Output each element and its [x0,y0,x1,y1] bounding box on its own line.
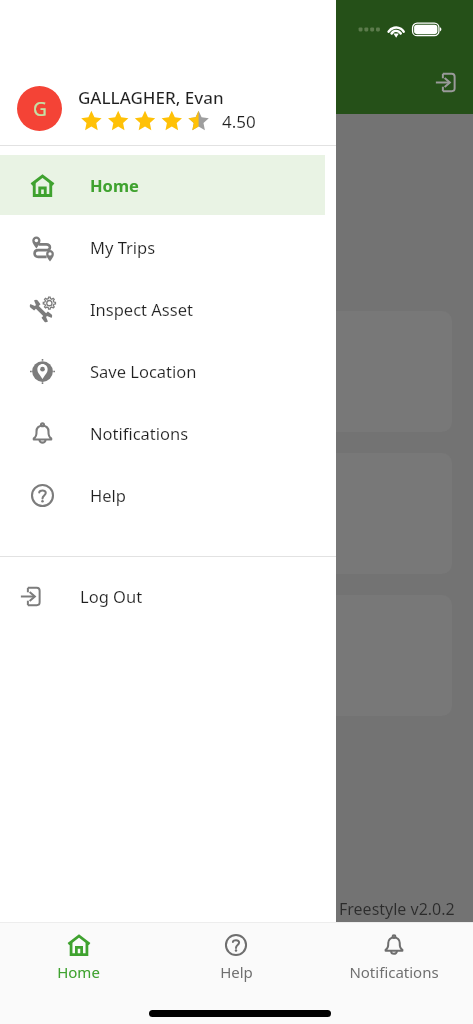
button[interactable]: Home [0,923,157,996]
button[interactable]: Home [0,155,325,215]
button[interactable]: Log out [422,59,469,106]
staticText: G [33,96,47,122]
staticText: GALLAGHER, Evan [78,86,224,109]
button[interactable]: My Trips [0,217,325,277]
button[interactable]: Help [0,465,325,525]
button[interactable]: Save Location [0,341,325,401]
staticText: Home [90,174,139,196]
staticText: Freestyle v2.0.2 [339,898,455,920]
staticText: Save Location [90,360,197,382]
staticText: Notifications [90,422,189,444]
button[interactable]: Help [157,923,315,996]
staticText: Help [90,484,126,506]
staticText: Notifications [349,962,439,982]
button[interactable]: Notifications [0,403,325,463]
button[interactable]: Log Out [0,557,336,635]
staticText: Inspect Asset [90,298,193,320]
button[interactable]: Inspect Asset [0,279,325,339]
staticText: My Trips [90,236,156,258]
staticText: Home [57,962,100,982]
staticText: 4.50 [222,110,256,133]
button[interactable]: Notifications [315,923,473,996]
staticText: Log Out [80,585,143,607]
staticText: Help [220,962,253,982]
